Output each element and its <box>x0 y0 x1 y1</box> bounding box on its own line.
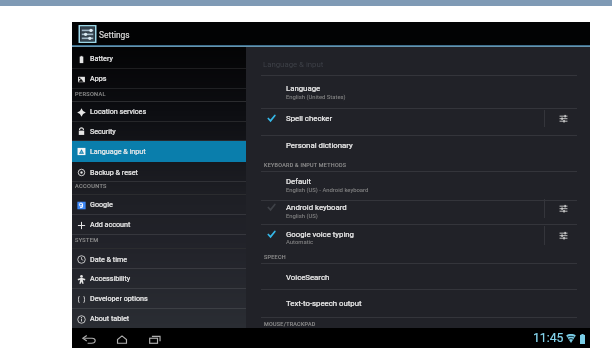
staticText: Spell checker <box>286 114 333 123</box>
staticText: Default <box>286 177 311 186</box>
staticText: Date & time <box>90 255 128 263</box>
button[interactable]: Security <box>72 122 246 141</box>
staticText: English (United States) <box>286 94 346 101</box>
staticText: Battery <box>90 54 113 62</box>
button[interactable]: Settings <box>545 110 581 127</box>
button[interactable]: Add account <box>72 215 246 235</box>
button[interactable]: Back <box>80 331 98 347</box>
staticText: ACCOUNTS <box>75 183 107 190</box>
button[interactable]: Language & input <box>72 141 246 162</box>
button[interactable]: Settings <box>545 199 581 218</box>
staticText: Security <box>90 127 116 135</box>
button[interactable]: About tablet <box>72 309 246 329</box>
button[interactable]: Battery <box>72 49 246 69</box>
button[interactable]: Settings <box>545 226 581 245</box>
button[interactable]: Apps <box>72 69 246 89</box>
staticText: Backup & reset <box>90 168 138 176</box>
button[interactable]: Recent apps <box>146 331 164 347</box>
button[interactable]: Language <box>246 80 590 102</box>
button[interactable]: Location services <box>72 102 246 122</box>
button[interactable]: Personal dictionary <box>246 137 590 154</box>
staticText: MOUSE/TRACKPAD <box>264 321 316 327</box>
staticText: Google <box>90 200 113 208</box>
staticText: Personal dictionary <box>286 141 353 150</box>
button[interactable]: Developer options <box>72 289 246 309</box>
staticText: Add account <box>90 220 131 228</box>
staticText: Settings <box>99 30 130 40</box>
button[interactable]: Default <box>246 173 590 195</box>
button[interactable]: Text-to-speech output <box>246 295 590 312</box>
staticText: Location services <box>90 107 147 115</box>
button[interactable]: Date & time <box>72 249 246 270</box>
button[interactable]: Backup & reset <box>72 163 246 182</box>
staticText: KEYBOARD & INPUT METHODS <box>264 162 347 168</box>
staticText: Apps <box>90 74 107 82</box>
staticText: Language & input <box>90 147 146 155</box>
staticText: SYSTEM <box>75 237 99 244</box>
staticText: SPEECH <box>264 254 286 260</box>
staticText: Google voice typing <box>286 230 354 239</box>
staticText: English (US) <box>286 213 318 220</box>
button[interactable]: Android keyboard <box>246 199 590 221</box>
staticText: 11:45 <box>533 331 564 345</box>
button[interactable]: Google voice typing <box>246 226 590 248</box>
button[interactable]: Settings <box>78 25 97 43</box>
button[interactable]: VoiceSearch <box>246 269 590 286</box>
staticText: Automatic <box>286 239 314 246</box>
button[interactable]: Home <box>113 331 131 347</box>
staticText: Language & input <box>263 60 324 69</box>
staticText: Accessibility <box>90 274 131 282</box>
staticText: English (US) - Android keyboard <box>286 187 369 194</box>
staticText: Language <box>286 84 321 93</box>
button[interactable]: Google <box>72 195 246 215</box>
staticText: PERSONAL <box>75 91 106 98</box>
staticText: Android keyboard <box>286 203 347 212</box>
staticText: Text-to-speech output <box>286 299 362 308</box>
button[interactable]: Accessibility <box>72 269 246 289</box>
staticText: VoiceSearch <box>286 273 330 282</box>
staticText: Developer options <box>90 294 148 302</box>
staticText: About tablet <box>90 314 130 322</box>
button[interactable]: Spell checker <box>246 110 590 127</box>
